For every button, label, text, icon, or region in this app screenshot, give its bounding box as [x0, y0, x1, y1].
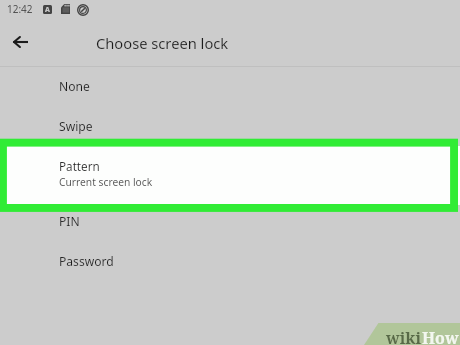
staticText: Choose screen lock [96, 33, 229, 53]
button[interactable]: PIN [0, 201, 460, 241]
staticText: Swipe [59, 118, 93, 134]
staticText: PIN [59, 213, 80, 229]
staticText: wiki [386, 327, 422, 345]
staticText: Pattern [59, 158, 100, 174]
staticText: 12:42 [7, 2, 33, 16]
staticText: Password [59, 253, 114, 269]
staticText: A [45, 5, 50, 14]
button[interactable]: Swipe [0, 106, 460, 146]
button[interactable]: Password [0, 241, 460, 281]
staticText: None [59, 78, 90, 94]
button[interactable]: None [0, 66, 460, 106]
staticText: How [422, 327, 459, 345]
button[interactable]: Pattern [0, 146, 460, 205]
staticText: Current screen lock [59, 175, 153, 189]
button[interactable]: Back [4, 26, 36, 58]
